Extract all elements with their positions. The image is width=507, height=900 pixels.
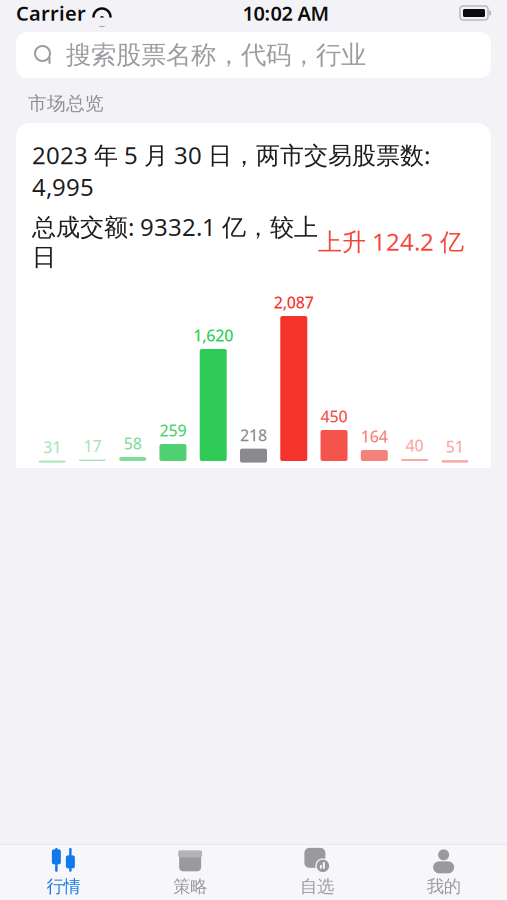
staticText: 450 bbox=[320, 406, 347, 427]
staticText: 4-7 bbox=[363, 466, 386, 487]
staticText: 31 bbox=[43, 436, 61, 458]
staticText: 总成交额: 9332.1 亿，较上日 bbox=[32, 211, 318, 272]
staticText: >7 bbox=[406, 466, 424, 487]
staticText: 底部反转 bbox=[32, 890, 156, 900]
button[interactable]: 行情 bbox=[0, 844, 127, 900]
staticText: 4-7 bbox=[121, 466, 144, 487]
staticText: 51 bbox=[446, 436, 464, 457]
button[interactable]: 我的 bbox=[380, 844, 507, 900]
staticText: 自选 bbox=[300, 876, 334, 897]
staticText: 58 bbox=[124, 433, 142, 454]
button[interactable]: 策略 bbox=[127, 844, 254, 900]
staticText: 我的 bbox=[427, 876, 461, 897]
staticText: 40 bbox=[406, 435, 424, 456]
staticText: 2,087 bbox=[274, 292, 314, 313]
staticText: 164 bbox=[361, 426, 388, 447]
staticText: 2-4 bbox=[161, 466, 184, 487]
staticText: 市场总览 bbox=[28, 92, 104, 115]
staticText: 精选策略 bbox=[28, 845, 104, 868]
staticText: 17 bbox=[83, 435, 101, 456]
staticText: 近 60 交易日 bbox=[363, 890, 475, 900]
staticText: 2-4 bbox=[322, 466, 345, 487]
staticText: 259 bbox=[159, 420, 186, 441]
button[interactable]: 自选 bbox=[253, 844, 380, 900]
staticText: 策略 bbox=[173, 876, 207, 897]
staticText: 2023 年 5 月 30 日，两市交易股票数: 4,995 bbox=[32, 139, 430, 203]
staticText: 10:02 AM bbox=[242, 0, 329, 26]
staticText: 搜索股票名称，代码，行业 bbox=[66, 39, 366, 70]
staticText: 行情 bbox=[46, 876, 80, 897]
staticText: 218 bbox=[240, 424, 267, 446]
staticText: Carrier bbox=[16, 0, 86, 26]
staticText: 0-2 bbox=[282, 466, 305, 487]
button[interactable]: 底部反转 bbox=[16, 876, 491, 900]
button[interactable]: 搜索股票名称，代码，行业 bbox=[16, 32, 491, 78]
staticText: 0-2 bbox=[202, 466, 225, 487]
staticText: 上升 124.2 亿 bbox=[318, 225, 464, 257]
staticText: 1,620 bbox=[193, 325, 233, 346]
staticText: >7 bbox=[83, 466, 101, 487]
